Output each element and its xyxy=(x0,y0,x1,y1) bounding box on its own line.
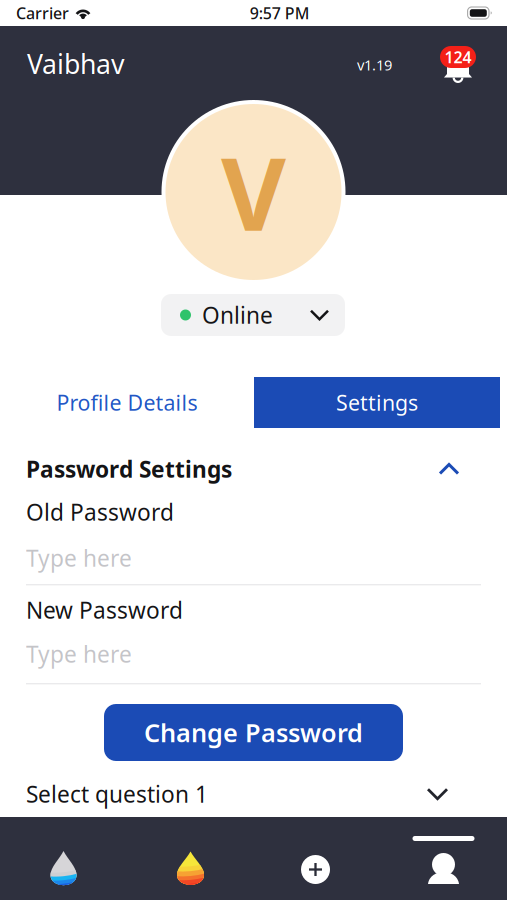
staticText: 9:57 PM xyxy=(250,2,310,24)
staticText: Change Password xyxy=(144,716,363,749)
button[interactable]: Profile Details xyxy=(0,377,254,428)
staticText: V xyxy=(221,126,286,258)
button[interactable]: Add xyxy=(252,828,379,900)
staticText: Settings xyxy=(336,388,418,417)
staticText: Select question 1 xyxy=(26,779,208,809)
staticText: Vaibhav xyxy=(27,46,125,81)
staticText: Type here xyxy=(26,639,132,669)
staticText: Old Password xyxy=(26,497,174,527)
button[interactable]: Settings xyxy=(254,377,500,428)
button[interactable]: New password field xyxy=(26,639,481,669)
button[interactable]: Energy xyxy=(127,828,254,900)
staticText: 124 xyxy=(444,46,471,68)
staticText: New Password xyxy=(26,595,183,625)
staticText: Carrier xyxy=(16,2,69,24)
button[interactable]: Profile xyxy=(380,817,507,900)
staticText: Password Settings xyxy=(26,454,232,484)
staticText: v1.19 xyxy=(357,55,392,74)
button[interactable]: Select question 1 xyxy=(26,779,447,809)
button[interactable]: Old password field xyxy=(26,543,481,573)
button[interactable]: Notifications xyxy=(440,46,476,86)
button[interactable]: Change Password xyxy=(104,704,403,761)
staticText: Online xyxy=(202,300,273,330)
staticText: Type here xyxy=(26,543,132,573)
button[interactable]: Hydration xyxy=(0,828,127,900)
button[interactable]: Password Settings xyxy=(26,454,481,484)
staticText: Profile Details xyxy=(56,388,197,417)
button[interactable]: Online xyxy=(161,294,345,336)
